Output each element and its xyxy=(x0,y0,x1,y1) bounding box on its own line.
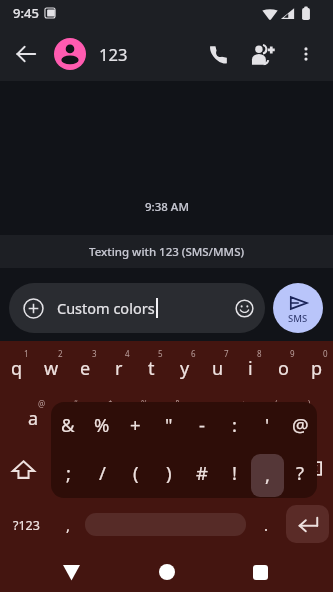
staticText: w xyxy=(44,356,59,381)
button[interactable]: ?123 xyxy=(2,494,50,556)
button[interactable]: , xyxy=(52,494,85,556)
staticText: ( xyxy=(275,398,278,409)
staticText: + xyxy=(241,398,246,409)
button[interactable]: 8 xyxy=(234,341,267,392)
staticText: 8 xyxy=(257,348,262,359)
button[interactable]: 9 xyxy=(267,341,300,392)
button[interactable]: - xyxy=(185,392,218,443)
button[interactable]: % xyxy=(118,392,152,443)
button[interactable]: 123 xyxy=(54,32,128,76)
staticText: f xyxy=(132,406,139,431)
button[interactable]: Add contact xyxy=(241,32,285,76)
staticText: $ xyxy=(108,398,113,409)
button[interactable]: + xyxy=(119,402,152,450)
button[interactable]: ' xyxy=(116,443,151,494)
button[interactable]: Attach xyxy=(20,295,46,321)
button[interactable]: % xyxy=(85,402,119,450)
staticText: 1 xyxy=(24,348,29,359)
button[interactable]: 7 xyxy=(201,341,234,392)
staticText: h xyxy=(196,406,208,431)
staticText: k xyxy=(263,406,273,431)
button[interactable]: 0 xyxy=(300,341,333,392)
staticText: 5 xyxy=(158,348,163,359)
button[interactable]: ? xyxy=(253,443,287,494)
staticText: % xyxy=(94,412,110,437)
button[interactable]: / xyxy=(85,450,119,497)
button[interactable]: Backspace xyxy=(287,443,333,494)
button[interactable]: Recent apps xyxy=(238,556,283,592)
button[interactable]: Shift xyxy=(0,443,46,494)
staticText: / xyxy=(99,460,106,485)
button[interactable]: ( xyxy=(119,450,152,497)
button[interactable]: @ xyxy=(284,402,317,450)
button[interactable]: 2 xyxy=(34,341,68,392)
button[interactable]: 4 xyxy=(102,341,135,392)
button[interactable]: @ xyxy=(16,392,50,443)
button[interactable]: Back xyxy=(4,32,48,76)
button[interactable]: : xyxy=(151,443,185,494)
button[interactable]: & xyxy=(152,392,185,443)
button[interactable]: ? xyxy=(284,450,317,497)
button[interactable]: " xyxy=(152,402,185,450)
button[interactable]: - xyxy=(185,402,218,450)
button[interactable]: ) xyxy=(152,450,185,497)
button[interactable]: & xyxy=(51,402,85,450)
button[interactable]: Call xyxy=(196,32,240,76)
button[interactable]: ! xyxy=(219,443,253,494)
button[interactable]: 1 xyxy=(0,341,34,392)
staticText: a xyxy=(28,406,39,431)
button[interactable]: Space xyxy=(85,513,246,536)
button[interactable]: : xyxy=(218,402,251,450)
staticText: b xyxy=(196,457,208,482)
staticText: ; xyxy=(66,460,71,485)
button[interactable]: * xyxy=(46,443,81,494)
button[interactable]: 3 xyxy=(68,341,102,392)
button[interactable]: Attach xyxy=(9,283,265,333)
staticText: # xyxy=(73,398,79,409)
button[interactable]: Back xyxy=(49,556,94,592)
button[interactable]: ' xyxy=(251,402,284,450)
staticText: + xyxy=(130,412,141,437)
button[interactable]: ( xyxy=(251,392,284,443)
staticText: ? xyxy=(277,449,281,460)
staticText: ) xyxy=(308,398,311,409)
staticText: q xyxy=(11,356,23,381)
staticText: r xyxy=(115,356,123,381)
button[interactable]: # xyxy=(185,450,218,497)
button[interactable]: More options xyxy=(285,33,327,75)
button[interactable]: 5 xyxy=(135,341,168,392)
button[interactable]: # xyxy=(50,392,84,443)
staticText: 2 xyxy=(58,348,63,359)
staticText: 6 xyxy=(191,348,196,359)
staticText: g xyxy=(163,406,175,431)
button[interactable]: ; xyxy=(51,450,85,497)
staticText: " xyxy=(165,412,173,437)
button[interactable]: + xyxy=(218,392,251,443)
button[interactable]: . xyxy=(250,494,283,556)
button[interactable]: , xyxy=(251,454,284,497)
button[interactable]: 6 xyxy=(168,341,201,392)
staticText: 4 xyxy=(125,348,130,359)
staticText: 9:38 AM xyxy=(145,199,189,215)
staticText: e xyxy=(80,356,91,381)
button[interactable]: $ xyxy=(84,392,118,443)
button[interactable]: ! xyxy=(218,450,251,497)
staticText: c xyxy=(129,457,138,482)
staticText: s xyxy=(63,406,72,431)
button[interactable]: ; xyxy=(185,443,219,494)
staticText: % xyxy=(141,398,148,409)
button[interactable]: Home xyxy=(144,556,189,592)
staticText: , xyxy=(265,462,270,487)
staticText: @ xyxy=(38,398,46,409)
staticText: : xyxy=(232,412,237,437)
staticText: , xyxy=(66,515,71,535)
button[interactable]: Emoji xyxy=(231,295,257,321)
button[interactable]: Enter xyxy=(286,505,329,543)
button[interactable]: " xyxy=(81,443,116,494)
button[interactable]: ) xyxy=(284,392,317,443)
staticText: v xyxy=(163,457,173,482)
button[interactable]: Send SMS xyxy=(273,283,323,333)
staticText: 0 xyxy=(323,348,328,359)
